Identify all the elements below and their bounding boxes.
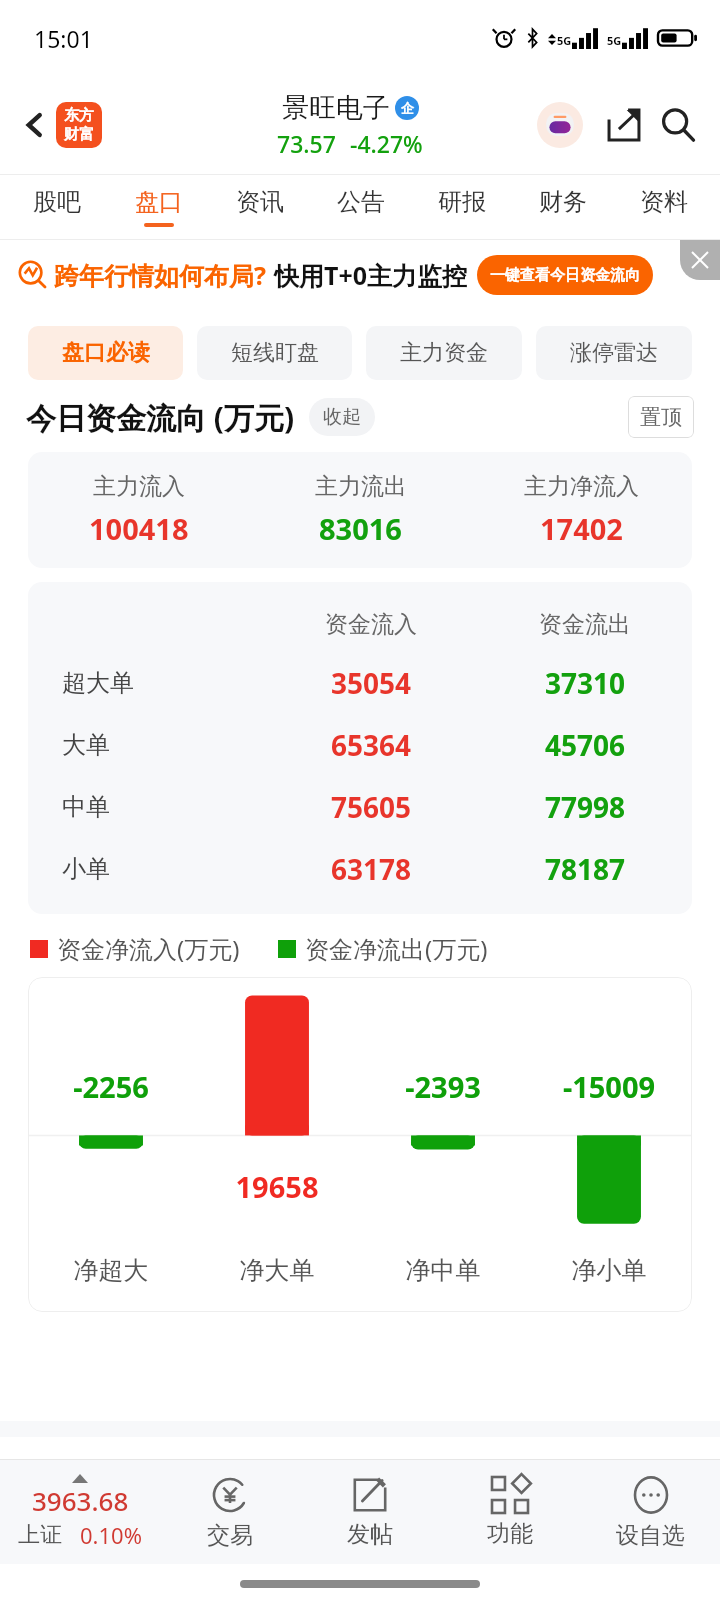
- staticText: 资金净流入(万元): [57, 932, 240, 965]
- staticText: 超大单: [62, 668, 134, 698]
- staticText: 景旺电子: [282, 91, 390, 125]
- staticText: 17402: [540, 509, 623, 548]
- staticText: 股吧: [33, 187, 81, 217]
- staticText: 77998: [478, 788, 692, 826]
- button[interactable]: 研报: [411, 175, 512, 239]
- staticText: 盘口必读: [62, 339, 150, 367]
- staticText: -2393: [360, 1067, 526, 1106]
- staticText: 主力流入: [93, 472, 185, 501]
- staticText: 15:01: [34, 23, 93, 54]
- staticText: 主力流出: [315, 472, 407, 501]
- staticText: 短线盯盘: [231, 339, 319, 367]
- button[interactable]: 设自选: [580, 1460, 720, 1564]
- staticText: 公告: [337, 187, 385, 217]
- staticText: 资讯: [236, 187, 284, 217]
- staticText: 跨年行情如何布局?: [54, 258, 266, 292]
- button[interactable]: -2256: [28, 977, 692, 1312]
- button[interactable]: 涨停雷达: [536, 326, 692, 380]
- staticText: 收起: [323, 405, 361, 429]
- staticText: 置顶: [640, 404, 682, 430]
- staticText: 净大单: [194, 1255, 360, 1286]
- button[interactable]: 公告: [310, 175, 411, 239]
- staticText: -15009: [526, 1067, 692, 1106]
- staticText: 快用T+0主力监控: [274, 258, 468, 292]
- staticText: 83016: [319, 509, 402, 548]
- button[interactable]: 主力流入: [28, 452, 692, 568]
- staticText: -2256: [28, 1067, 194, 1106]
- staticText: 研报: [438, 187, 486, 217]
- button[interactable]: Share: [600, 101, 648, 149]
- staticText: 中单: [62, 792, 110, 822]
- staticText: 净小单: [526, 1255, 692, 1286]
- button[interactable]: 置顶: [628, 396, 694, 438]
- staticText: 大单: [62, 730, 110, 760]
- button[interactable]: Search: [654, 101, 702, 149]
- staticText: 5G: [607, 33, 622, 48]
- staticText: 交易: [207, 1521, 253, 1550]
- button[interactable]: 资讯: [209, 175, 310, 239]
- staticText: 73.57: [277, 128, 336, 159]
- staticText: 资金净流出(万元): [305, 932, 488, 965]
- staticText: 3963.68: [32, 1483, 129, 1518]
- staticText: 19658: [194, 1167, 360, 1206]
- staticText: 主力资金: [400, 339, 488, 367]
- staticText: 企: [401, 100, 414, 116]
- button[interactable]: 功能: [440, 1460, 580, 1564]
- button[interactable]: 财务: [512, 175, 613, 239]
- staticText: 78187: [478, 850, 692, 888]
- staticText: 东方: [64, 106, 94, 125]
- button[interactable]: AI assistant: [534, 99, 586, 151]
- button[interactable]: Back: [14, 104, 56, 146]
- staticText: 75605: [264, 788, 478, 826]
- button[interactable]: Close ad: [680, 240, 720, 280]
- staticText: 65364: [264, 726, 478, 764]
- staticText: 45706: [478, 726, 692, 764]
- button[interactable]: 3963.68: [0, 1460, 160, 1564]
- staticText: 发帖: [347, 1520, 393, 1549]
- button[interactable]: 发帖: [300, 1460, 440, 1564]
- staticText: 63178: [264, 850, 478, 888]
- staticText: 资料: [640, 187, 688, 217]
- staticText: 5G: [557, 33, 572, 48]
- staticText: 0.10%: [80, 1520, 142, 1550]
- staticText: 功能: [487, 1519, 533, 1548]
- staticText: 37310: [478, 664, 692, 702]
- staticText: 财务: [539, 187, 587, 217]
- button[interactable]: 盘口: [108, 175, 209, 239]
- staticText: 盘口: [135, 187, 183, 217]
- button[interactable]: 盘口必读: [28, 326, 183, 380]
- button[interactable]: 收起: [309, 398, 375, 436]
- button[interactable]: 交易: [160, 1460, 300, 1564]
- button[interactable]: 资料: [613, 175, 714, 239]
- button[interactable]: 一键查看今日资金流向: [477, 255, 653, 295]
- button[interactable]: 主力资金: [366, 326, 522, 380]
- button[interactable]: 短线盯盘: [197, 326, 352, 380]
- staticText: 资金流出: [478, 610, 692, 639]
- button[interactable]: 跨年行情如何布局?: [18, 255, 720, 295]
- staticText: 主力净流入: [524, 472, 639, 501]
- staticText: 今日资金流向 (万元): [26, 397, 295, 438]
- staticText: 净中单: [360, 1255, 526, 1286]
- staticText: 设自选: [616, 1521, 685, 1550]
- staticText: 财富: [64, 125, 94, 144]
- staticText: -4.27%: [350, 128, 423, 159]
- staticText: 35054: [264, 664, 478, 702]
- button[interactable]: 资金流入: [28, 582, 692, 914]
- button[interactable]: 股吧: [6, 175, 108, 239]
- button[interactable]: East Money logo: [56, 102, 102, 148]
- staticText: 小单: [62, 854, 110, 884]
- staticText: 100418: [89, 509, 189, 548]
- staticText: 资金流入: [264, 610, 478, 639]
- staticText: 一键查看今日资金流向: [490, 266, 640, 285]
- staticText: 涨停雷达: [570, 339, 658, 367]
- staticText: 净超大: [28, 1255, 194, 1286]
- staticText: 上证: [18, 1521, 62, 1549]
